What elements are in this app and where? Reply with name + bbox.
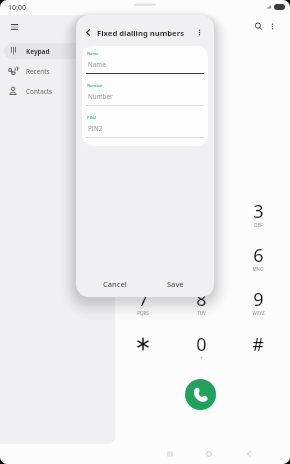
button[interactable]: 7 bbox=[117, 281, 169, 319]
staticText: 7 bbox=[138, 287, 149, 312]
button[interactable]: Call bbox=[185, 379, 216, 410]
staticText: Contacts bbox=[26, 87, 53, 96]
button[interactable]: Search bbox=[250, 18, 267, 35]
staticText: PIN2 bbox=[87, 115, 97, 120]
button[interactable]: More options bbox=[190, 23, 208, 41]
staticText: 9 bbox=[253, 287, 264, 312]
button[interactable]: 5 bbox=[175, 237, 227, 275]
staticText: DEF bbox=[254, 222, 263, 228]
staticText: Cancel bbox=[103, 279, 127, 289]
button[interactable]: Keypad bbox=[4, 43, 111, 59]
button[interactable]: 0 bbox=[175, 326, 227, 364]
staticText: PIN2 bbox=[88, 124, 103, 133]
staticText: + bbox=[200, 355, 203, 361]
staticText: MNO bbox=[252, 266, 264, 272]
staticText: # bbox=[252, 332, 264, 357]
staticText: Save bbox=[167, 279, 184, 289]
staticText: WXYZ bbox=[252, 310, 265, 316]
button[interactable]: Back bbox=[238, 443, 259, 464]
button[interactable]: Contacts bbox=[4, 83, 111, 99]
button[interactable]: Recent apps bbox=[159, 443, 180, 464]
staticText: 10:00 bbox=[8, 3, 26, 13]
button[interactable]: Save bbox=[145, 273, 206, 295]
button[interactable]: 3 bbox=[232, 193, 284, 231]
button[interactable]: 8 bbox=[175, 281, 227, 319]
button[interactable]: 6 bbox=[232, 237, 284, 275]
button[interactable]: 2 bbox=[175, 193, 227, 231]
staticText: 6 bbox=[253, 243, 264, 268]
button[interactable]: Recents bbox=[4, 63, 111, 79]
button[interactable]: Home bbox=[198, 443, 219, 464]
staticText: Name bbox=[87, 51, 99, 56]
staticText: PQRS bbox=[137, 310, 149, 316]
button[interactable]: Navigation menu bbox=[4, 17, 24, 37]
staticText: Recents bbox=[26, 67, 50, 76]
staticText: Keypad bbox=[26, 47, 50, 56]
staticText: 8 bbox=[196, 287, 207, 312]
button[interactable]: Back bbox=[79, 23, 97, 41]
staticText: 3 bbox=[253, 199, 264, 224]
button[interactable]: 9 bbox=[232, 281, 284, 319]
button[interactable]: More options bbox=[264, 18, 281, 35]
staticText: Name bbox=[88, 60, 106, 69]
staticText: 0 bbox=[196, 332, 207, 357]
staticText: Number bbox=[87, 83, 103, 88]
staticText: Fixed dialling numbers bbox=[97, 28, 184, 38]
staticText: TUV bbox=[197, 310, 206, 316]
staticText: Number bbox=[88, 92, 113, 101]
button[interactable]: # bbox=[232, 326, 284, 364]
button[interactable] bbox=[117, 326, 169, 364]
button[interactable]: Cancel bbox=[84, 273, 145, 295]
